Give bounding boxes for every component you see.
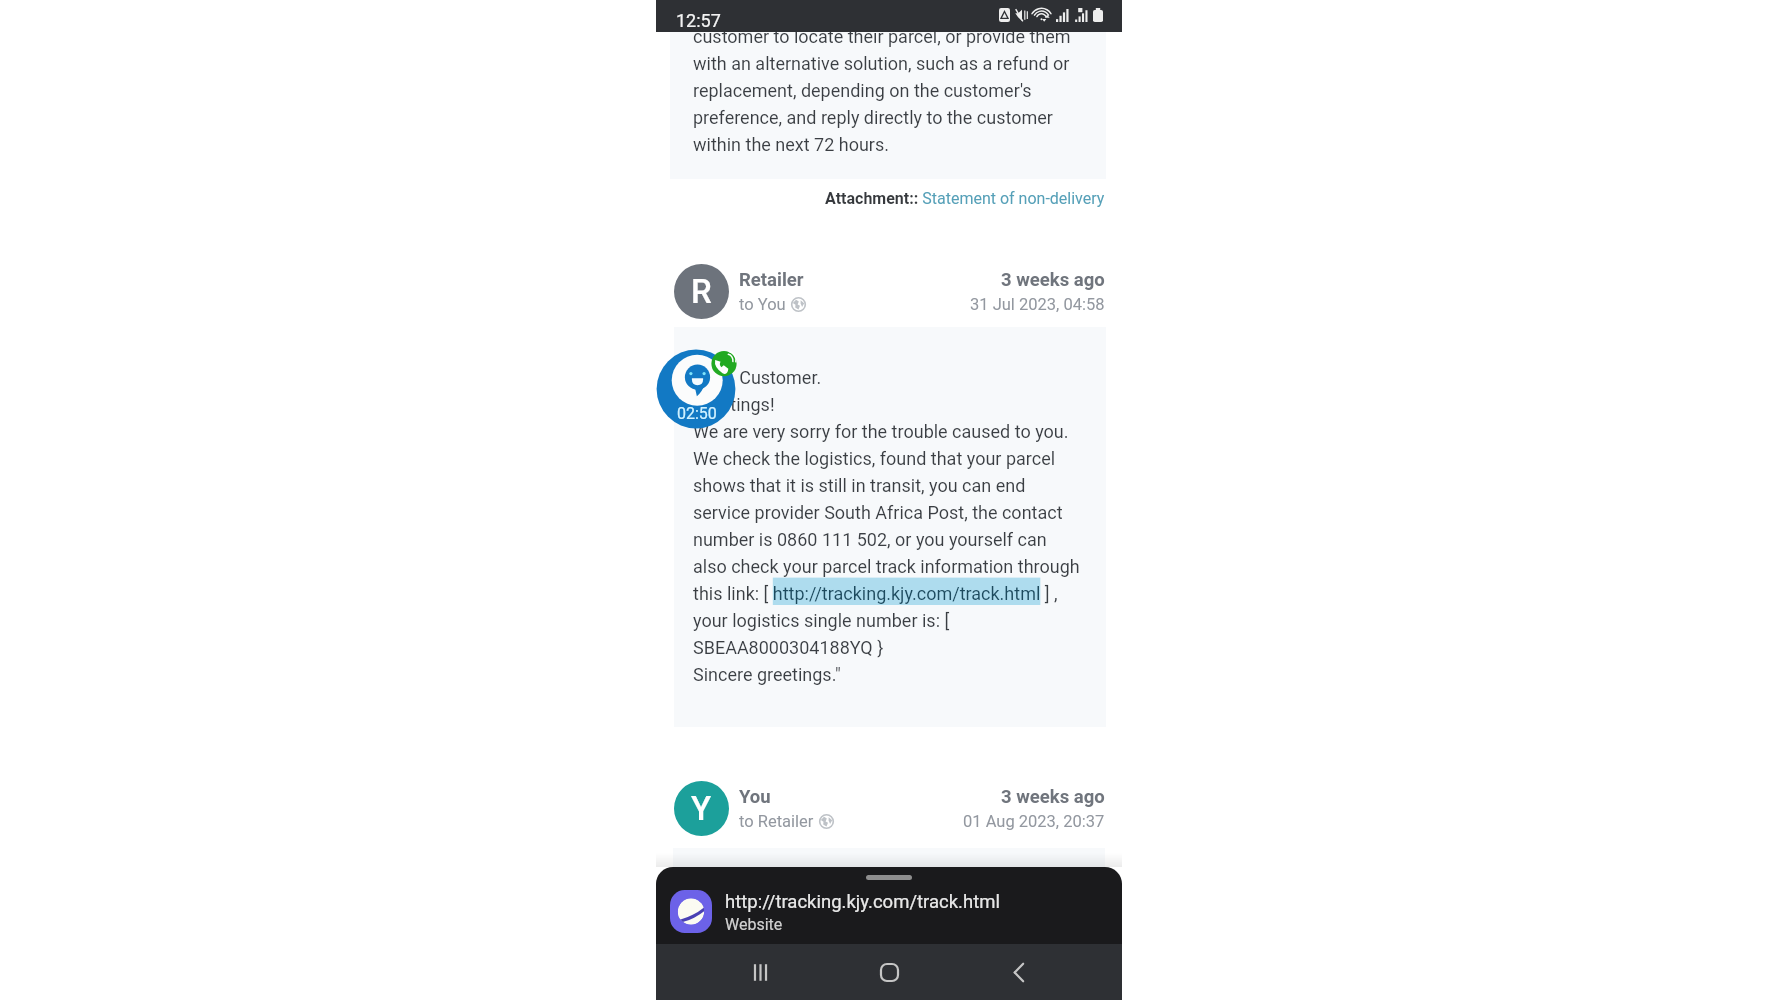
staticText: 12:57 <box>676 10 721 31</box>
button[interactable]: Home <box>863 946 915 998</box>
button[interactable]: Back <box>993 946 1045 998</box>
button[interactable]: Recent apps <box>734 946 786 998</box>
button[interactable]: Attachment:: Statement of non-delivery <box>825 189 1105 208</box>
staticText: customer to locate their parcel, or prov… <box>693 26 1071 155</box>
staticText: 31 Jul 2023, 04:58 <box>970 295 1105 314</box>
staticText: 3 weeks ago <box>1001 786 1105 808</box>
staticText: Retailer <box>739 269 804 291</box>
staticText: Y <box>691 789 712 828</box>
button[interactable]: Ongoing call <box>656 350 736 430</box>
staticText: http://tracking.kjy.com/track.html <box>725 891 1000 913</box>
staticText: to You <box>739 295 786 314</box>
button[interactable]: Y <box>674 781 1105 836</box>
staticText: to Retailer <box>739 812 814 831</box>
staticText: 01 Aug 2023, 20:37 <box>963 812 1105 831</box>
staticText: 02:50 <box>677 404 717 423</box>
staticText: R <box>691 272 712 311</box>
button[interactable]: R <box>674 264 1105 319</box>
staticText: Website <box>725 915 783 934</box>
staticText: Dear Customer. Greetings! We are very so… <box>693 367 1080 685</box>
button[interactable]: http://tracking.kjy.com/track.html <box>670 890 1122 933</box>
staticText: 3 weeks ago <box>1001 269 1105 291</box>
staticText: You <box>739 786 771 808</box>
